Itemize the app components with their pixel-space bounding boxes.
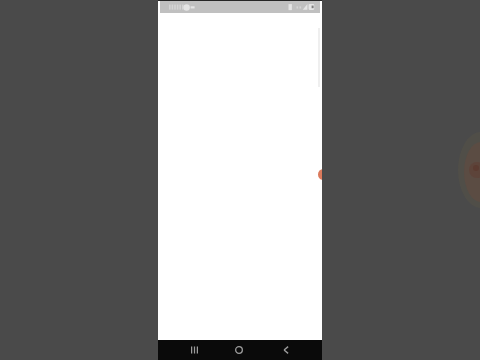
button[interactable]: Back xyxy=(274,340,298,360)
button[interactable]: Home xyxy=(227,340,251,360)
button[interactable]: Recents xyxy=(182,340,206,360)
button[interactable]: Add xyxy=(318,169,322,180)
